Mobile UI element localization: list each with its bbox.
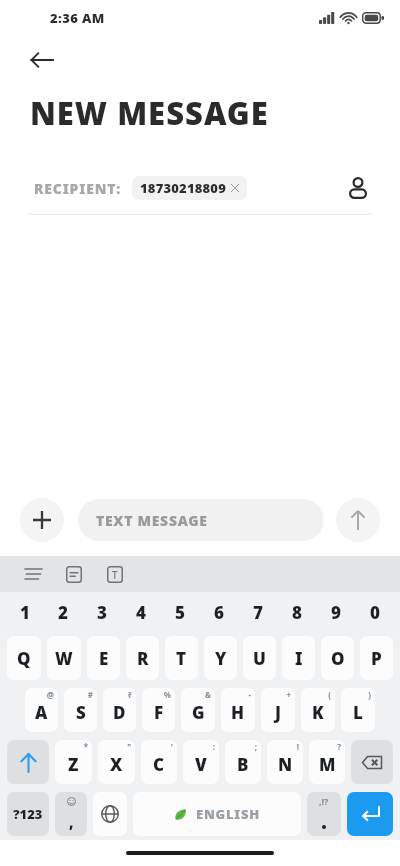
staticText: ; xyxy=(254,741,257,752)
staticText: H xyxy=(231,701,245,724)
staticText: , xyxy=(69,812,74,832)
button[interactable]: ? xyxy=(309,740,345,784)
staticText: M xyxy=(319,753,336,776)
staticText: ENGLISH xyxy=(196,805,260,823)
staticText: : xyxy=(212,741,215,752)
button[interactable]: Y xyxy=(204,636,237,680)
staticText: ! xyxy=(296,741,299,752)
staticText: E xyxy=(99,647,109,670)
button[interactable]: Enter xyxy=(347,792,393,836)
button[interactable]: ( xyxy=(301,688,335,732)
staticText: ) xyxy=(368,689,371,700)
staticText: & xyxy=(205,689,211,700)
button[interactable]: 0 xyxy=(355,592,394,632)
staticText: RECIPIENT: xyxy=(34,179,122,198)
button[interactable]: & xyxy=(181,688,215,732)
staticText: X xyxy=(110,753,123,776)
button[interactable]: Q xyxy=(7,636,41,680)
staticText: T xyxy=(176,647,187,670)
button[interactable]: % xyxy=(142,688,175,732)
button[interactable]: @ xyxy=(25,688,58,732)
button[interactable]: ' xyxy=(141,740,177,784)
button[interactable]: 4 xyxy=(121,592,160,632)
button[interactable]: 2 xyxy=(44,592,82,632)
staticText: " xyxy=(127,741,131,752)
staticText: NEW MESSAGE xyxy=(30,92,269,134)
staticText: 3 xyxy=(97,601,107,624)
button[interactable]: 9 xyxy=(316,592,355,632)
button[interactable]: U xyxy=(243,636,276,680)
button[interactable]: Change language xyxy=(93,792,127,836)
staticText: TEXT MESSAGE xyxy=(96,511,208,530)
button[interactable]: 18730218809 xyxy=(132,176,247,200)
staticText: # xyxy=(87,689,93,700)
button[interactable]: 8 xyxy=(277,592,316,632)
button[interactable]: Add attachment xyxy=(20,498,64,542)
staticText: 9 xyxy=(331,601,341,624)
staticText: C xyxy=(153,753,165,776)
button[interactable]: Shift xyxy=(7,740,49,784)
button[interactable]: * xyxy=(55,740,92,784)
staticText: 18730218809 xyxy=(140,179,226,197)
button[interactable]: ,!? xyxy=(307,792,341,836)
staticText: * xyxy=(83,741,88,752)
button[interactable]: 1 xyxy=(6,592,44,632)
button[interactable]: # xyxy=(64,688,97,732)
button[interactable]: 5 xyxy=(160,592,199,632)
button[interactable]: ! xyxy=(267,740,303,784)
staticText: 0 xyxy=(370,601,380,624)
button[interactable]: - xyxy=(221,688,255,732)
staticText: + xyxy=(286,689,291,700)
button[interactable]: Backspace xyxy=(351,740,393,784)
button[interactable]: Clipboard xyxy=(59,559,89,589)
button[interactable]: 6 xyxy=(199,592,238,632)
button[interactable]: ; xyxy=(225,740,261,784)
button[interactable]: Text style xyxy=(100,559,130,589)
button[interactable]: TEXT MESSAGE xyxy=(78,499,324,541)
button[interactable]: P xyxy=(360,636,393,680)
button[interactable]: 7 xyxy=(238,592,277,632)
button[interactable]: O xyxy=(321,636,354,680)
button[interactable]: + xyxy=(261,688,295,732)
button[interactable]: 3 xyxy=(82,592,121,632)
staticText: % xyxy=(163,689,171,700)
button[interactable]: ) xyxy=(341,688,375,732)
button[interactable]: E xyxy=(87,636,120,680)
button[interactable]: , xyxy=(55,792,87,836)
staticText: ,!? xyxy=(319,795,329,807)
staticText: J xyxy=(275,701,281,724)
button[interactable]: ?123 xyxy=(7,792,49,836)
staticText: 6 xyxy=(214,601,224,624)
staticText: ' xyxy=(170,741,173,752)
staticText: T xyxy=(112,568,118,582)
button[interactable]: ENGLISH xyxy=(133,792,301,836)
staticText: ( xyxy=(328,689,331,700)
staticText: N xyxy=(278,753,293,776)
staticText: O xyxy=(331,647,345,670)
staticText: 7 xyxy=(253,601,263,624)
staticText: P xyxy=(371,647,382,670)
staticText: U xyxy=(253,647,266,670)
button[interactable]: ₹ xyxy=(103,688,136,732)
button[interactable]: Back xyxy=(22,40,62,80)
staticText: - xyxy=(248,689,251,700)
staticText: 8 xyxy=(292,601,302,624)
button[interactable]: T xyxy=(165,636,198,680)
button[interactable]: : xyxy=(183,740,219,784)
staticText: V xyxy=(195,753,207,776)
button[interactable]: I xyxy=(282,636,315,680)
button[interactable]: Send xyxy=(336,498,380,542)
button[interactable]: W xyxy=(47,636,81,680)
staticText: 2:36 AM xyxy=(50,9,105,27)
staticText: F xyxy=(154,701,164,724)
staticText: W xyxy=(55,647,73,670)
button[interactable]: R xyxy=(126,636,159,680)
staticText: Y xyxy=(215,647,227,670)
button[interactable]: " xyxy=(98,740,135,784)
staticText: ₹ xyxy=(127,689,132,700)
staticText: 5 xyxy=(175,601,185,624)
button[interactable]: Choose contact xyxy=(340,170,376,206)
button[interactable]: Menu xyxy=(18,559,48,589)
staticText: K xyxy=(312,701,324,724)
staticText: 1 xyxy=(20,601,30,624)
